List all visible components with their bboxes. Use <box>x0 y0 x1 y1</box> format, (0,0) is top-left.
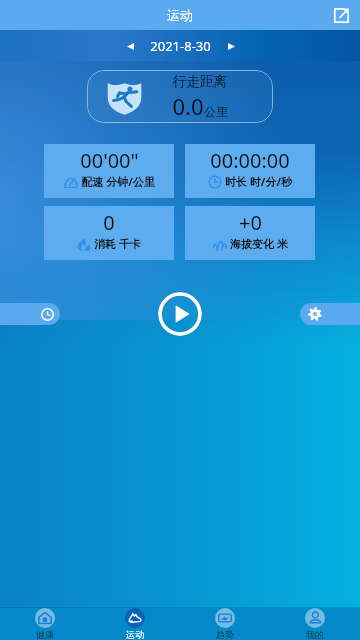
button[interactable]: 0 <box>44 206 174 260</box>
button[interactable]: Next day <box>220 35 242 57</box>
staticText: 我的 <box>306 629 324 640</box>
button[interactable]: 趋势 <box>180 608 270 640</box>
staticText: 运动 <box>167 7 193 23</box>
staticText: 公里 <box>204 104 228 119</box>
staticText: 行走距离 <box>173 73 227 90</box>
staticText: 0.0 <box>172 91 204 121</box>
staticText: 健康 <box>36 629 54 640</box>
staticText: 运动 <box>126 629 144 640</box>
button[interactable]: 健康 <box>0 608 90 640</box>
staticText: 00:00:00 <box>210 147 290 174</box>
button[interactable]: History <box>0 303 60 325</box>
staticText: 海拔变化 米 <box>230 236 288 251</box>
button[interactable]: 行走距离 <box>87 70 273 123</box>
button[interactable]: Previous day <box>119 35 141 57</box>
staticText: 消耗 千卡 <box>94 236 141 251</box>
button[interactable]: Settings <box>300 303 360 325</box>
staticText: +0 <box>239 209 262 236</box>
staticText: 配速 分钟/公里 <box>81 174 155 189</box>
staticText: 2021-8-30 <box>150 37 211 55</box>
staticText: 趋势 <box>216 629 234 640</box>
button[interactable]: 运动 <box>90 608 180 640</box>
staticText: 0 <box>103 209 115 236</box>
staticText: 时长 时/分/秒 <box>225 174 292 189</box>
button[interactable]: Start workout <box>158 292 202 336</box>
button[interactable]: 00:00:00 <box>185 144 315 198</box>
button[interactable]: Share <box>329 3 353 27</box>
staticText: 00'00" <box>80 147 139 174</box>
button[interactable]: 00'00" <box>44 144 174 198</box>
button[interactable]: +0 <box>185 206 315 260</box>
button[interactable]: 我的 <box>270 608 360 640</box>
